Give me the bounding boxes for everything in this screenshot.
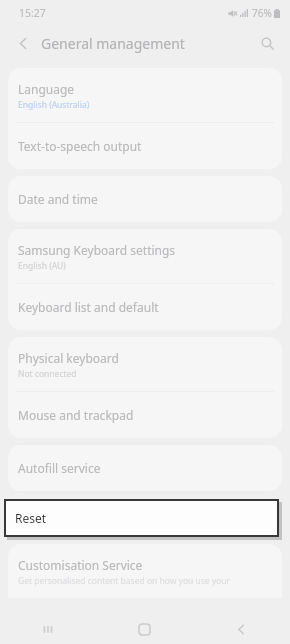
- button[interactable]: Language: [8, 68, 282, 122]
- staticText: General management: [41, 34, 185, 53]
- button[interactable]: Text-to-speech output: [8, 123, 282, 169]
- staticText: Language: [18, 81, 75, 97]
- button[interactable]: Navigate up: [11, 31, 35, 55]
- button[interactable]: Samsung Keyboard settings: [8, 229, 282, 283]
- staticText: Samsung Keyboard settings: [18, 242, 176, 258]
- staticText: 76%: [252, 6, 272, 20]
- staticText: English (Australia): [18, 99, 90, 111]
- staticText: Keyboard list and default: [18, 299, 159, 315]
- staticText: Customisation Service: [18, 557, 143, 573]
- button[interactable]: Home: [96, 614, 193, 644]
- staticText: Not connected: [18, 368, 77, 380]
- button[interactable]: Physical keyboard: [8, 337, 282, 391]
- button[interactable]: Recent apps: [0, 614, 96, 644]
- staticText: Mouse and trackpad: [18, 407, 134, 423]
- button[interactable]: Search: [254, 30, 280, 56]
- button[interactable]: Mouse and trackpad: [8, 392, 282, 438]
- staticText: Date and time: [18, 191, 98, 207]
- button[interactable]: Autofill service: [8, 445, 282, 491]
- button[interactable]: Keyboard list and default: [8, 284, 282, 330]
- staticText: Text-to-speech output: [18, 138, 142, 154]
- staticText: English (AU): [18, 260, 66, 272]
- staticText: Get personalised content based on how yo…: [18, 575, 231, 587]
- staticText: 15:27: [19, 6, 46, 20]
- staticText: Autofill service: [18, 460, 101, 476]
- staticText: Physical keyboard: [18, 350, 119, 366]
- button[interactable]: Reset: [6, 501, 277, 535]
- button[interactable]: Date and time: [8, 176, 282, 222]
- staticText: Reset: [15, 510, 47, 526]
- button[interactable]: Customisation Service: [8, 544, 282, 598]
